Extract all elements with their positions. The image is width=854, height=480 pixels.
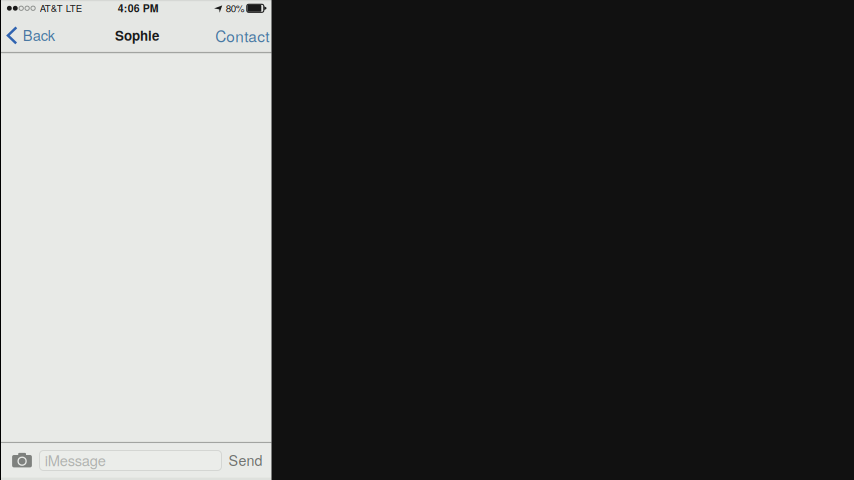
staticText: AT&T LTE: [40, 1, 82, 15]
staticText: Contact: [215, 25, 269, 47]
staticText: 80%: [226, 1, 245, 15]
button[interactable]: Contact: [215, 17, 273, 52]
staticText: 4:06 PM: [118, 0, 159, 15]
button[interactable]: Send: [228, 447, 270, 477]
staticText: Sophie: [115, 26, 159, 45]
button[interactable]: Back: [1, 17, 63, 52]
staticText: Back: [23, 24, 55, 45]
staticText: Send: [228, 450, 262, 470]
button[interactable]: Take photo or video: [7, 443, 41, 480]
staticText: iMessage: [45, 449, 106, 470]
